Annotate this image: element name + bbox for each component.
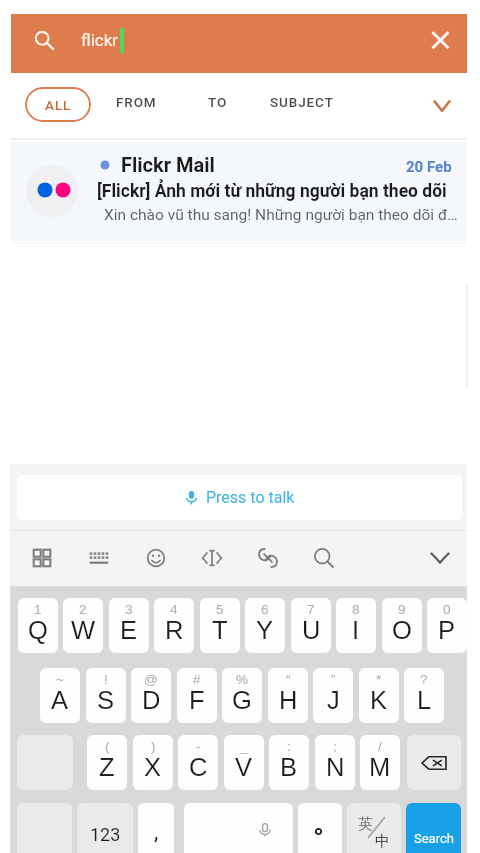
staticText: Z [99,753,115,781]
staticText: U [302,616,321,644]
staticText: 2 [79,602,87,617]
staticText: I [352,616,360,644]
staticText: , [154,819,159,845]
staticText: B [280,753,298,781]
staticText: W [71,616,96,644]
button[interactable]: 0 [427,598,467,653]
button[interactable]: Emoji [137,539,175,577]
staticText: N [326,753,345,781]
button[interactable]: ” [313,668,353,723]
staticText: Search [414,831,454,846]
button[interactable]: Apps [23,539,61,577]
staticText: SUBJECT [270,94,334,110]
staticText: ; [333,739,337,754]
button[interactable]: Search [23,24,62,63]
button[interactable]: 6 [245,598,285,653]
staticText: FROM [116,94,157,110]
button[interactable]: SUBJECT [260,82,344,122]
staticText: ! [104,672,108,687]
button[interactable]: ) [133,735,173,790]
staticText: flickr [81,30,119,50]
button[interactable]: “ [268,668,308,723]
button[interactable]: : [269,735,309,790]
staticText: 5 [216,602,224,617]
button[interactable]: ? [404,668,444,723]
staticText: S [97,686,115,714]
staticText: O [392,616,412,644]
staticText: ? [420,672,428,687]
button[interactable]: 3 [109,598,149,653]
button[interactable]: 5 [200,598,240,653]
button[interactable]: FROM [106,82,167,122]
staticText: Y [256,616,274,644]
button[interactable]: ! [86,668,126,723]
staticText: “ [286,672,291,687]
staticText: 123 [90,824,121,845]
staticText: 中 [375,832,390,851]
staticText: M [369,753,391,781]
staticText: Press to talk [206,488,295,507]
staticText: K [370,686,388,714]
staticText: X [144,753,162,781]
button[interactable]: 4 [154,598,194,653]
button[interactable]: Backspace [407,735,461,790]
button[interactable]: Text editing [193,539,231,577]
staticText: ” [331,672,336,687]
staticText: % [236,672,249,687]
staticText: 英 [358,815,373,834]
button[interactable]: # [177,668,217,723]
button[interactable]: Link [249,539,287,577]
button[interactable]: 1 [18,598,58,653]
staticText: G [232,686,252,714]
button[interactable]: ~ [40,668,80,723]
staticText: J [327,686,340,714]
staticText: 8 [352,602,360,617]
button[interactable]: Full stop [298,803,342,853]
button[interactable]: / [360,735,400,790]
staticText: : [287,739,291,754]
button[interactable]: Flickr Mail [11,142,467,241]
button[interactable]: 7 [291,598,331,653]
button[interactable]: * [359,668,399,723]
button[interactable]: 8 [336,598,376,653]
staticText: / [378,739,382,754]
button[interactable]: Keyboard layouts [80,539,118,577]
button[interactable]: 9 [382,598,422,653]
button[interactable]: _ [224,735,264,790]
button[interactable]: ; [315,735,355,790]
staticText: E [120,616,138,644]
button[interactable]: Hide keyboard [421,539,459,577]
staticText: P [438,616,456,644]
button[interactable]: % [222,668,262,723]
staticText: - [196,739,201,754]
button[interactable]: - [178,735,218,790]
button[interactable]: Voice input [184,803,293,853]
staticText: 20 Feb [406,158,452,176]
staticText: TO [208,94,228,110]
button[interactable]: 123 [77,803,133,853]
button[interactable]: More filters [419,83,464,128]
button[interactable]: Switch input language [347,803,401,853]
staticText: 4 [170,602,178,617]
staticText: 7 [307,602,315,617]
staticText: # [193,672,201,687]
button[interactable]: Press to talk [17,475,462,520]
button[interactable]: TO [198,82,238,122]
button[interactable]: @ [131,668,171,723]
button[interactable]: Search [305,539,343,577]
button[interactable]: 2 [63,598,103,653]
button[interactable]: Close search [416,16,465,65]
staticText: ~ [56,672,64,687]
staticText: L [417,686,432,714]
button[interactable]: , [138,803,174,853]
button[interactable]: Search [11,14,467,73]
staticText: 1 [34,602,42,617]
button[interactable]: ( [87,735,127,790]
staticText: ALL [45,97,72,113]
staticText: [Flickr] Ảnh mới từ những người bạn theo… [97,181,447,202]
button[interactable]: ALL [25,87,91,122]
button[interactable]: Search [406,803,461,853]
staticText: @ [144,672,158,687]
